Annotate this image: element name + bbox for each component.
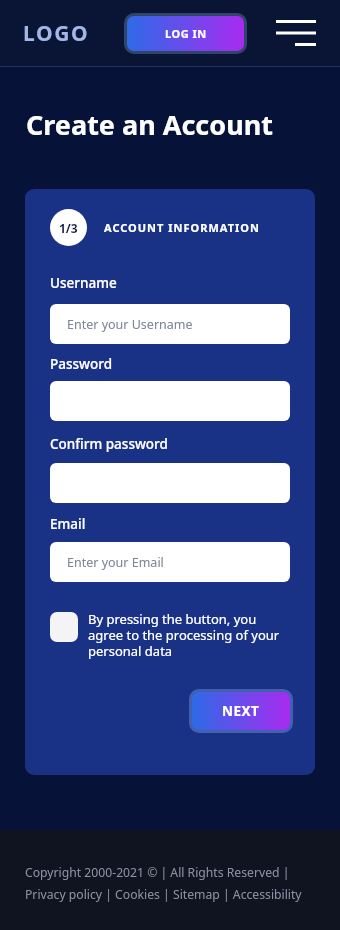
button[interactable]: NEXT — [192, 692, 290, 730]
button[interactable] — [276, 20, 316, 47]
staticText: By pressing the button, you agree to the… — [88, 610, 280, 660]
button[interactable]: LOG IN — [127, 16, 244, 51]
staticText: Password — [50, 355, 113, 373]
button[interactable]: Enter your Email — [50, 542, 290, 582]
button[interactable] — [50, 612, 78, 642]
staticText: LOG IN — [165, 26, 207, 41]
staticText: Email — [50, 515, 86, 533]
button[interactable] — [50, 381, 290, 421]
staticText: 1/3 — [59, 220, 78, 236]
button[interactable]: Enter your Username — [50, 304, 290, 344]
staticText: Copyright 2000-2021 © | All Rights Reser… — [25, 864, 302, 903]
staticText: Create an Account — [26, 106, 273, 143]
staticText: Enter your Username — [67, 316, 193, 333]
staticText: NEXT — [222, 702, 260, 720]
staticText: Username — [50, 274, 117, 292]
button[interactable] — [50, 463, 290, 503]
staticText: Confirm password — [50, 435, 168, 453]
staticText: LOGO — [23, 19, 90, 48]
staticText: Enter your Email — [67, 554, 164, 571]
staticText: ACCOUNT INFORMATION — [104, 220, 260, 235]
